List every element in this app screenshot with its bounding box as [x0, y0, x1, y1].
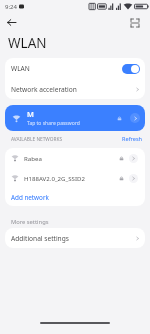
- button[interactable]: Refresh: [122, 135, 143, 143]
- staticText: 9:24: [5, 3, 17, 11]
- staticText: Add network: [11, 193, 49, 202]
- staticText: More settings: [11, 218, 49, 226]
- staticText: M: [27, 109, 34, 119]
- staticText: Network acceleration: [11, 85, 77, 94]
- button[interactable]: WLAN: [5, 58, 145, 79]
- staticText: WLAN: [11, 64, 30, 73]
- staticText: Additional settings: [11, 234, 69, 243]
- button[interactable]: H188AV2.0_2G_SSID2: [5, 168, 145, 188]
- button[interactable]: Scan QR code: [128, 16, 141, 29]
- staticText: AVAILABLE NETWORKS: [11, 136, 63, 143]
- staticText: Rabea: [24, 154, 42, 162]
- button[interactable]: Add network: [5, 188, 145, 206]
- button[interactable]: Network acceleration: [5, 79, 145, 99]
- staticText: Tap to share password: [27, 120, 80, 127]
- button[interactable]: Additional settings: [5, 228, 145, 248]
- button[interactable]: Back: [4, 15, 19, 30]
- button[interactable]: Rabea: [5, 148, 145, 168]
- button[interactable]: M: [5, 105, 145, 131]
- staticText: H188AV2.0_2G_SSID2: [24, 174, 85, 182]
- staticText: WLAN: [8, 34, 47, 50]
